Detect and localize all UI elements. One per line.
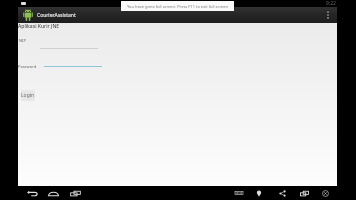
button[interactable]: Close xyxy=(319,188,332,199)
button[interactable]: Location xyxy=(253,188,265,199)
button[interactable]: Recent apps xyxy=(67,188,84,199)
button[interactable]: More options xyxy=(323,8,332,21)
staticText: You have gone full screen. Press F11 to … xyxy=(127,4,229,9)
button[interactable]: Login xyxy=(21,90,35,101)
staticText: NIP xyxy=(19,38,26,43)
staticText: Login xyxy=(21,92,35,99)
staticText: CourierAssistant xyxy=(37,12,76,19)
staticText: Aplikasi Kurir JNE xyxy=(18,23,60,30)
button[interactable]: Share xyxy=(276,188,289,199)
button[interactable]: Screenshot xyxy=(297,188,312,199)
staticText: 9:22 xyxy=(326,0,336,7)
button[interactable]: Back xyxy=(24,188,41,199)
button[interactable]: Home xyxy=(45,188,62,199)
button[interactable]: Show keyboard xyxy=(232,188,246,198)
staticText: Password xyxy=(18,64,37,69)
